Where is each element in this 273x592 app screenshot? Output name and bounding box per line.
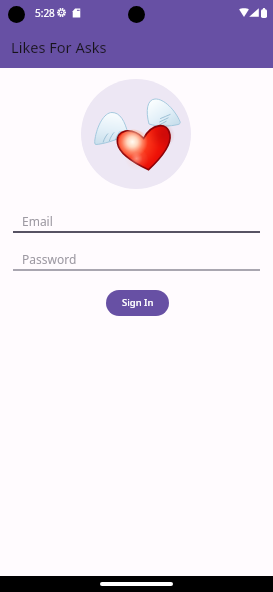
staticText: Password: [22, 251, 77, 267]
button[interactable]: Email: [13, 207, 260, 233]
other: Screenshot: [72, 8, 81, 18]
button[interactable]: Password: [13, 245, 260, 271]
staticText: 5:28: [35, 6, 55, 20]
button[interactable]: Home: [100, 582, 173, 586]
other: Wi-Fi: [239, 8, 249, 17]
button[interactable]: Sign In: [106, 290, 169, 316]
other: Settings: [57, 8, 66, 17]
staticText: Likes For Asks: [11, 37, 107, 57]
staticText: Email: [22, 213, 53, 229]
other: Mobile signal: [249, 8, 259, 17]
other: Battery: [261, 8, 267, 18]
staticText: Sign In: [122, 296, 154, 309]
